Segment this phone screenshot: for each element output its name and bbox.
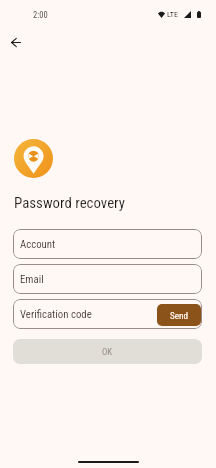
staticText: OK <box>102 347 113 357</box>
button[interactable]: OK <box>13 339 202 364</box>
button[interactable]: Email <box>13 264 202 294</box>
staticText: Send <box>170 310 189 321</box>
button[interactable]: Send <box>157 304 201 326</box>
button[interactable]: Back <box>4 31 27 54</box>
staticText: Email <box>20 273 44 286</box>
button[interactable]: Account <box>13 229 202 259</box>
staticText: Account <box>20 238 56 251</box>
button[interactable]: Verification code <box>13 299 202 329</box>
staticText: Verification code <box>20 308 92 321</box>
staticText: 2:00 <box>33 10 48 20</box>
staticText: Password recovery <box>14 194 125 211</box>
staticText: LTE <box>167 10 178 19</box>
